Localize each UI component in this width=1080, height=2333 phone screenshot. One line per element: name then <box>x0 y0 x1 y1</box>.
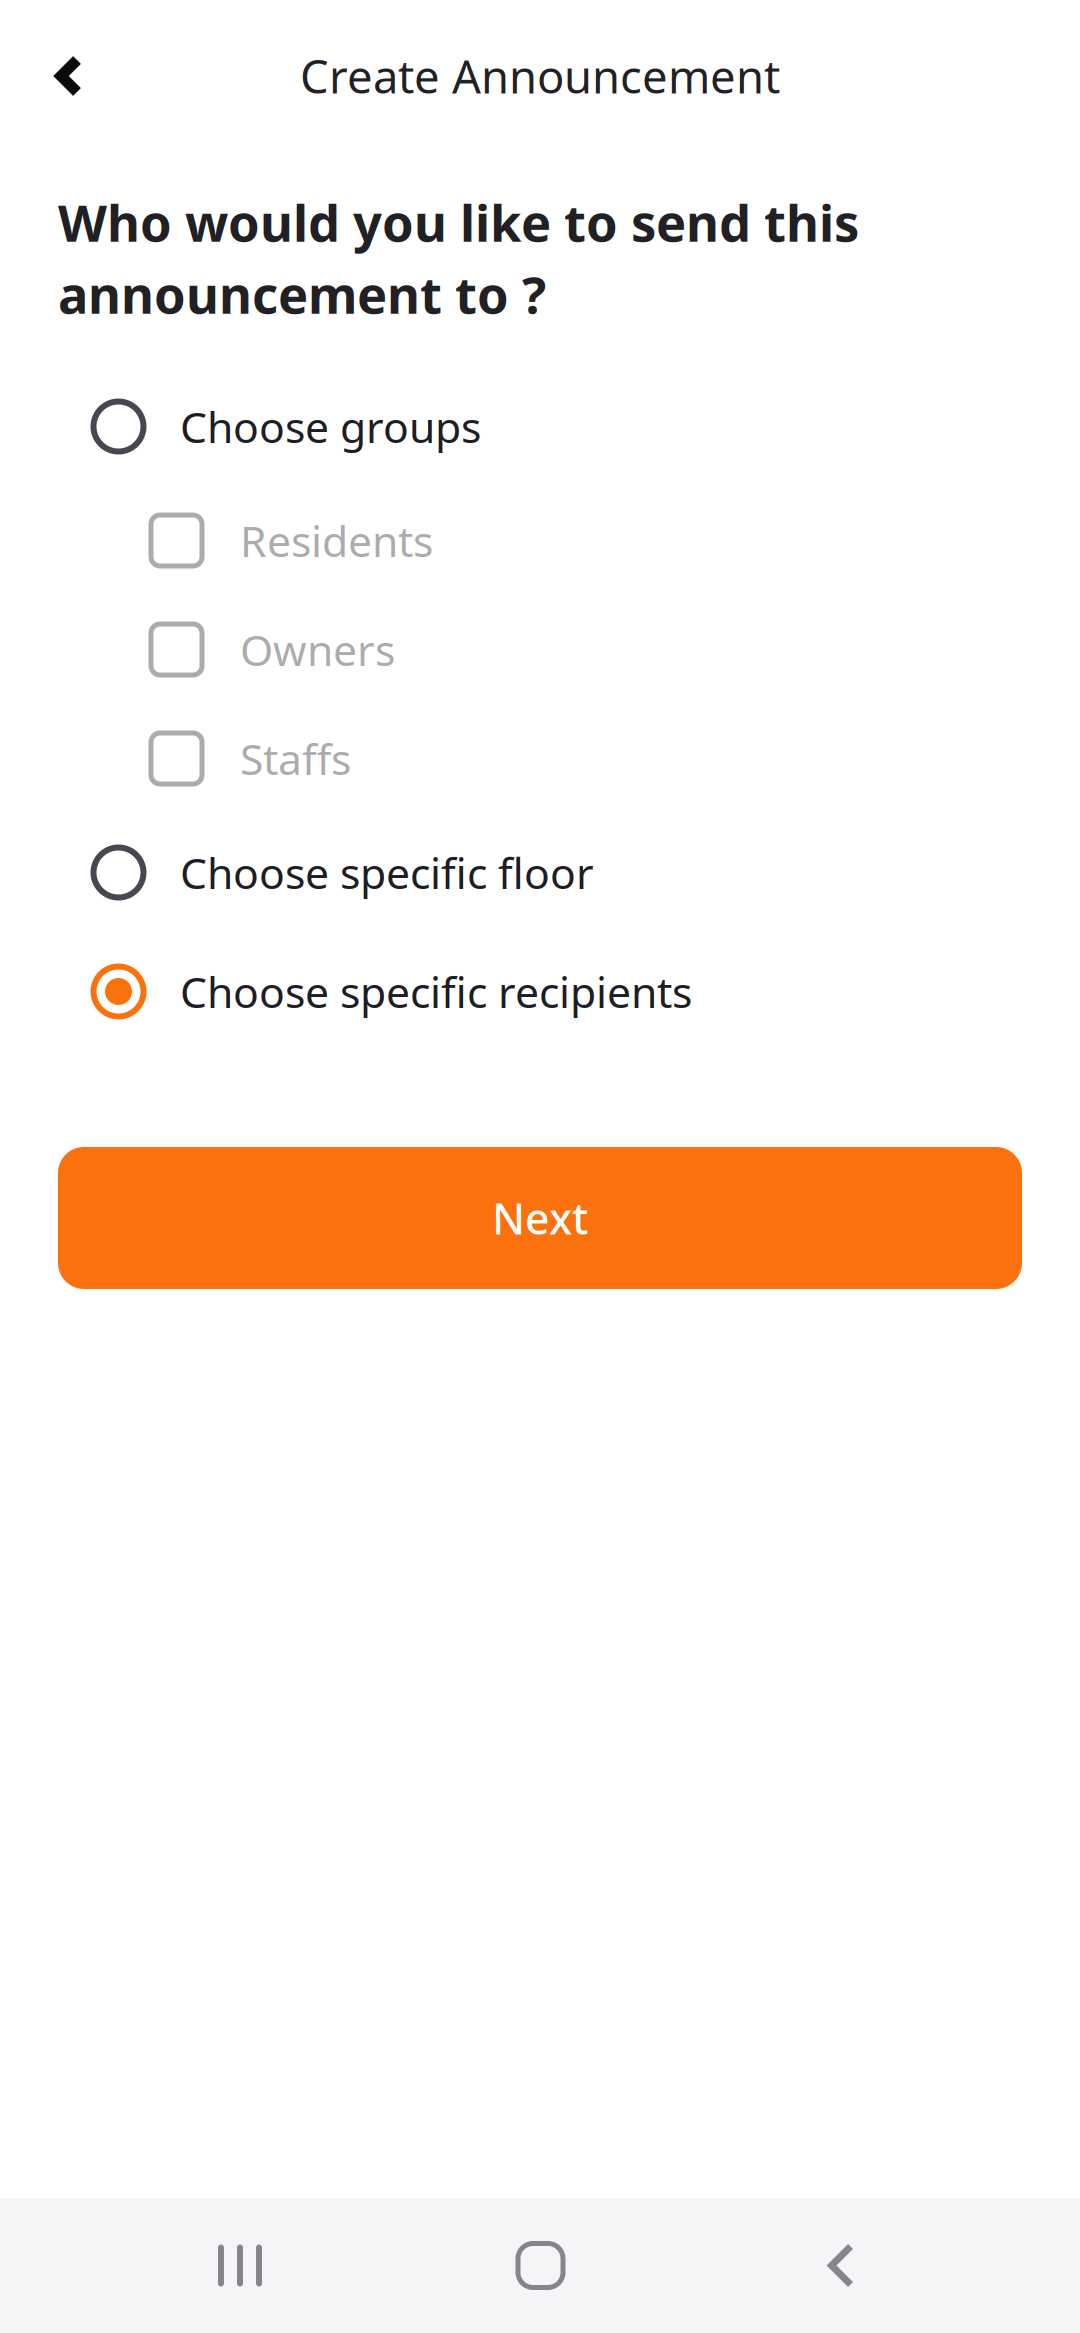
button[interactable]: Home <box>480 2198 600 2333</box>
staticText: Staffs <box>240 730 351 787</box>
button[interactable]: Choose specific floor <box>0 813 1080 932</box>
staticText: Who would you like to send this <box>58 188 859 256</box>
button[interactable]: Choose groups <box>0 367 1080 486</box>
button[interactable]: Staffs <box>0 704 1080 813</box>
staticText: Residents <box>240 512 433 569</box>
staticText: announcement to ? <box>58 260 546 328</box>
button[interactable]: Back <box>781 2198 901 2333</box>
button[interactable]: Owners <box>0 595 1080 704</box>
staticText: Choose specific recipients <box>180 963 692 1020</box>
button[interactable]: Choose specific recipients <box>0 932 1080 1051</box>
button[interactable]: Back <box>0 30 113 122</box>
staticText: Choose specific floor <box>180 844 594 901</box>
staticText: Next <box>492 1190 588 1246</box>
button[interactable]: Residents <box>0 486 1080 595</box>
staticText: Create Announcement <box>300 46 780 106</box>
button[interactable]: Recent apps <box>180 2198 300 2333</box>
staticText: Choose groups <box>180 398 481 455</box>
button[interactable]: Next <box>58 1147 1022 1289</box>
staticText: Owners <box>240 621 395 678</box>
